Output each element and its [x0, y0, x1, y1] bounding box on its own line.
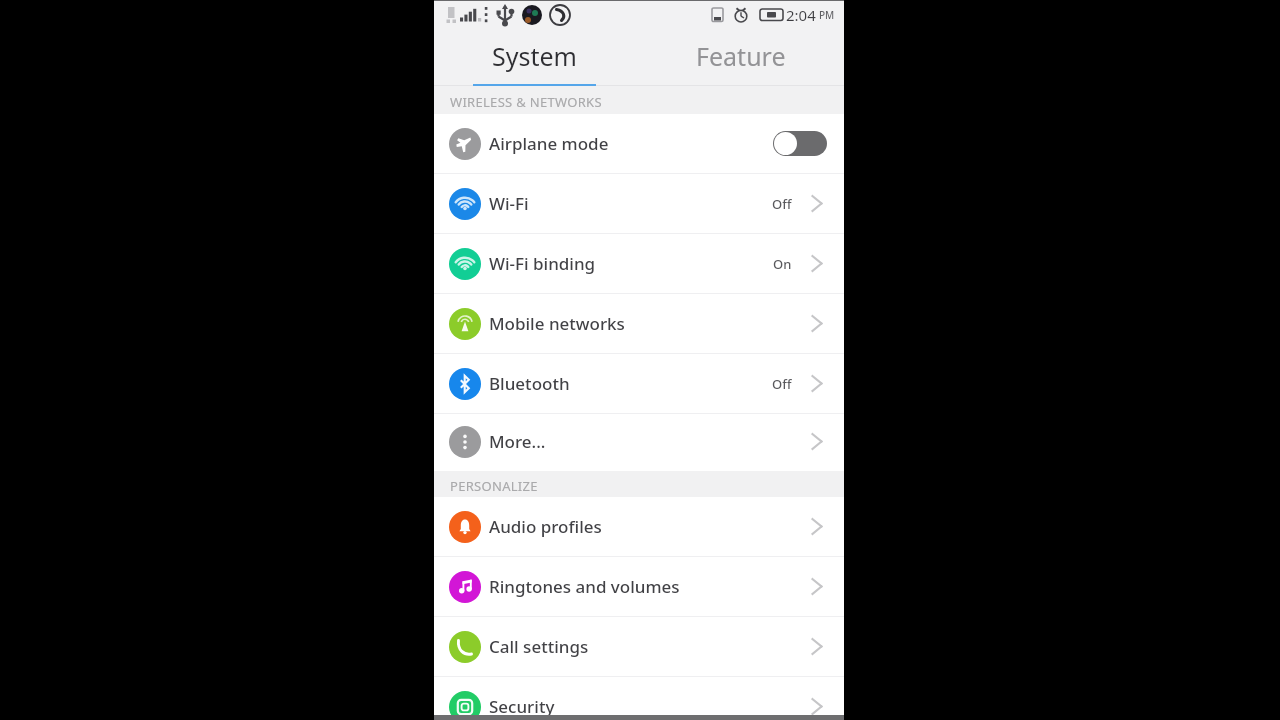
staticText: Off — [772, 375, 792, 393]
button[interactable]: Open Security — [811, 698, 823, 715]
button[interactable]: Open Wi-Fi — [811, 195, 823, 212]
staticText: Bluetooth — [489, 372, 570, 395]
button[interactable]: Bluetooth — [434, 354, 844, 413]
button[interactable]: Ringtones and volumes — [434, 557, 844, 616]
button[interactable]: Airplane mode toggle — [773, 131, 827, 156]
staticText: Airplane mode — [489, 132, 609, 155]
staticText: 2:04 — [786, 5, 816, 25]
staticText: Wi-Fi — [489, 192, 529, 215]
staticText: PM — [819, 8, 835, 22]
button[interactable]: Call settings — [434, 617, 844, 676]
staticText: Ringtones and volumes — [489, 575, 680, 598]
button[interactable]: Open More... — [811, 433, 823, 450]
button[interactable]: Open Bluetooth — [811, 375, 823, 392]
staticText: Call settings — [489, 635, 589, 658]
staticText: Off — [772, 195, 792, 213]
button[interactable]: Airplane mode — [434, 114, 844, 173]
button[interactable]: Mobile networks — [434, 294, 844, 353]
staticText: Mobile networks — [489, 312, 625, 335]
button[interactable]: Open Wi-Fi binding — [811, 255, 823, 272]
button[interactable]: Feature — [639, 29, 844, 86]
staticText: WIRELESS & NETWORKS — [450, 93, 602, 111]
staticText: Audio profiles — [489, 515, 602, 538]
button[interactable]: Audio profiles — [434, 497, 844, 556]
staticText: More... — [489, 430, 546, 453]
button[interactable]: Security — [434, 677, 844, 720]
staticText: Security — [489, 695, 555, 718]
button[interactable]: Open Mobile networks — [811, 315, 823, 332]
button[interactable]: System — [434, 29, 639, 86]
button[interactable]: Open Call settings — [811, 638, 823, 655]
button[interactable]: More... — [434, 414, 844, 471]
button[interactable]: Wi-Fi — [434, 174, 844, 233]
button[interactable]: Wi-Fi binding — [434, 234, 844, 293]
staticText: System — [492, 39, 577, 73]
staticText: Wi-Fi binding — [489, 252, 596, 275]
button[interactable]: Open Ringtones and volumes — [811, 578, 823, 595]
staticText: On — [773, 255, 792, 273]
staticText: PERSONALIZE — [450, 477, 538, 495]
staticText: Feature — [696, 39, 786, 73]
button[interactable]: Open Audio profiles — [811, 518, 823, 535]
